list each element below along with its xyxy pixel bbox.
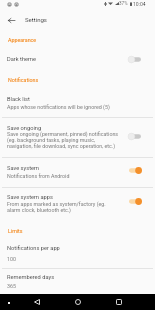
staticText: Notifications per app xyxy=(7,245,60,252)
button[interactable] xyxy=(0,47,155,70)
other: Off xyxy=(128,132,142,141)
staticText: Settings xyxy=(25,16,47,23)
other: On xyxy=(128,197,142,206)
staticText: Save ongoing (permanent, pinned) notific… xyxy=(7,131,120,149)
staticText: Dark theme xyxy=(7,56,37,63)
staticText: From apps marked as system/factory (eg. … xyxy=(7,201,120,213)
other: Off xyxy=(128,55,142,64)
staticText: Save system xyxy=(7,165,40,172)
button[interactable] xyxy=(0,118,155,158)
staticText: 365 xyxy=(7,283,120,289)
staticText: Save system apps xyxy=(7,194,53,201)
staticText: Save ongoing xyxy=(7,125,42,132)
staticText: Appearance xyxy=(8,37,37,43)
staticText: Apps whose notifications will be ignored… xyxy=(7,104,120,110)
button[interactable] xyxy=(0,187,155,216)
staticText: 10:04 xyxy=(133,1,146,7)
staticText: Limits xyxy=(8,228,23,234)
staticText: Notifications xyxy=(8,77,39,83)
button[interactable] xyxy=(0,158,155,187)
staticText: Black list xyxy=(7,96,30,103)
staticText: 100 xyxy=(7,256,120,262)
staticText: Notifications from Android xyxy=(7,173,120,179)
staticText: Remembered days xyxy=(7,274,55,281)
staticText: 37% xyxy=(119,1,128,6)
button[interactable] xyxy=(0,88,155,118)
button[interactable]: Back xyxy=(30,295,44,309)
other: On xyxy=(128,166,142,175)
button[interactable] xyxy=(0,239,155,268)
button[interactable] xyxy=(0,268,155,294)
button[interactable]: Home xyxy=(71,295,85,309)
button[interactable]: Back xyxy=(3,12,19,28)
button[interactable]: Recent apps xyxy=(112,295,126,309)
